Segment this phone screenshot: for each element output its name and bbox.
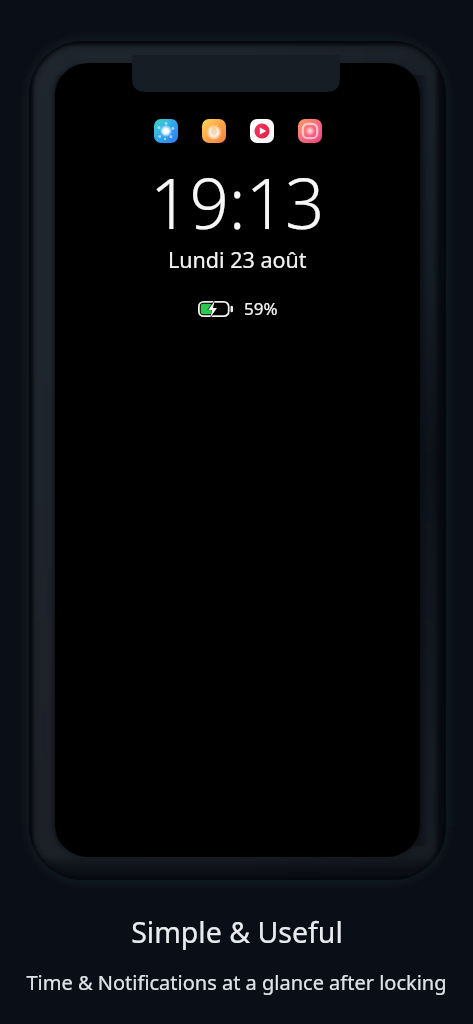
button[interactable] [202, 119, 226, 143]
staticText: Simple & Useful [131, 913, 343, 952]
staticText: 59% [244, 297, 278, 320]
button[interactable] [154, 119, 178, 143]
button[interactable] [298, 119, 322, 143]
staticText: Time & Notifications at a glance after l… [26, 969, 447, 996]
staticText: Lundi 23 août [168, 245, 307, 274]
staticText: 19:13 [150, 155, 325, 249]
button[interactable] [250, 119, 274, 143]
